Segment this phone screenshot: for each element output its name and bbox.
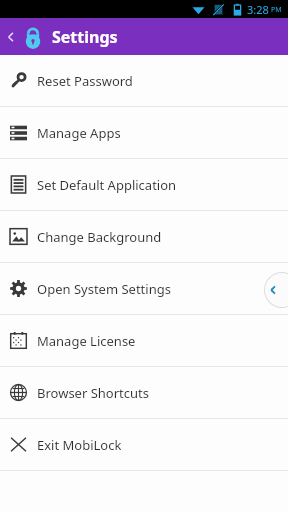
button[interactable]: Manage Apps xyxy=(0,107,288,158)
staticText: Set Default Application xyxy=(37,176,177,194)
staticText: PM xyxy=(271,5,282,15)
button[interactable]: Browser Shortcuts xyxy=(0,367,288,418)
button[interactable]: Set Default Application xyxy=(0,159,288,210)
staticText: Manage Apps xyxy=(37,124,121,142)
staticText: Open System Settings xyxy=(37,280,171,298)
staticText: Exit MobiLock xyxy=(37,436,122,454)
staticText: Manage License xyxy=(37,332,136,350)
staticText: Reset Password xyxy=(37,72,133,90)
staticText: Change Background xyxy=(37,228,162,246)
staticText: Browser Shortcuts xyxy=(37,384,149,402)
button[interactable]: Open System Settings xyxy=(0,263,288,314)
button[interactable]: Manage License xyxy=(0,315,288,366)
button[interactable]: Reset Password xyxy=(0,55,288,106)
button[interactable]: Open drawer xyxy=(264,272,288,308)
staticText: Settings xyxy=(52,26,118,48)
button[interactable]: Back xyxy=(0,18,22,55)
other: MobiLock xyxy=(22,26,44,48)
staticText: 3:28 xyxy=(247,2,269,17)
button[interactable]: Change Background xyxy=(0,211,288,262)
button[interactable]: Exit MobiLock xyxy=(0,419,288,470)
